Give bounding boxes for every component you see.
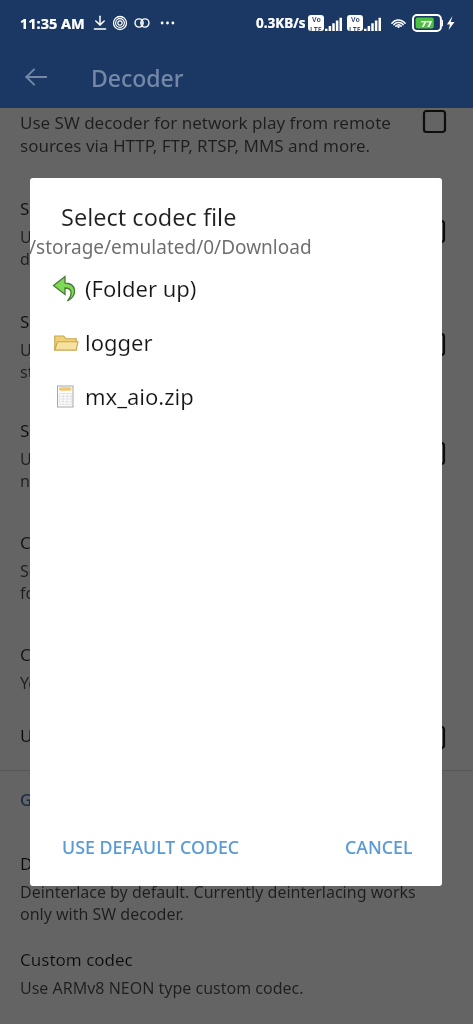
- staticText: Custom codec: [20, 948, 133, 971]
- staticText: LTE: [310, 25, 322, 31]
- staticText: Skip loop filter: [20, 197, 135, 220]
- staticText: 77: [421, 17, 432, 30]
- button[interactable]: Toggle: [423, 334, 444, 355]
- button[interactable]: USE DEFAULT CODEC: [48, 823, 254, 871]
- staticText: Vo: [312, 15, 321, 25]
- staticText: Skip B frames: [20, 419, 129, 442]
- button[interactable]: Custom codec: [0, 948, 473, 1024]
- staticText: Custom codec info: [20, 643, 169, 666]
- button[interactable]: Custom codec info: [0, 643, 473, 738]
- staticText: Use to speed up playback by skipping ste…: [20, 339, 302, 383]
- staticText: Use custom codec: [20, 724, 165, 747]
- staticText: CANCEL: [345, 835, 413, 859]
- staticText: mx_aio.zip: [85, 381, 194, 411]
- button[interactable]: logger: [30, 315, 442, 369]
- staticText: General: [20, 788, 82, 810]
- staticText: Use ARMv8 NEON type custom codec.: [20, 977, 304, 999]
- staticText: Select custom codec file by choosing zip…: [20, 560, 320, 604]
- staticText: LTE: [349, 25, 361, 31]
- button[interactable]: mx_aio.zip: [30, 369, 442, 423]
- staticText: (Folder up): [85, 273, 197, 303]
- button[interactable]: Toggle: [423, 443, 444, 464]
- staticText: 0.3KB/s: [256, 14, 306, 32]
- button[interactable]: Toggle: [424, 111, 445, 132]
- staticText: Decoder: [91, 62, 184, 93]
- staticText: USE DEFAULT CODEC: [62, 835, 240, 859]
- button[interactable]: Use custom codec: [0, 724, 473, 764]
- button[interactable]: Toggle: [423, 727, 444, 748]
- staticText: Vo: [351, 15, 360, 25]
- button[interactable]: Deinterlace: [0, 852, 473, 947]
- button[interactable]: Custom codec: [0, 531, 473, 626]
- staticText: Deinterlace by default. Currently deinte…: [20, 881, 416, 925]
- staticText: Your device currently uses ARMv8 codec.: [20, 672, 325, 694]
- button[interactable]: (Folder up): [30, 261, 442, 315]
- staticText: logger: [85, 327, 153, 357]
- staticText: Custom codec: [20, 531, 133, 554]
- button[interactable]: Skip frames: [0, 310, 473, 405]
- staticText: /storage/emulated/0/Download: [30, 234, 312, 260]
- staticText: Use SW decoder for network play from rem…: [20, 111, 391, 157]
- staticText: Use to speed up playback by skipping dec…: [20, 226, 302, 270]
- button[interactable]: CANCEL: [331, 823, 427, 871]
- button[interactable]: Skip B frames: [0, 419, 473, 514]
- staticText: Skip frames: [20, 310, 114, 333]
- staticText: Select codec file: [61, 201, 237, 233]
- button[interactable]: Back: [6, 46, 66, 108]
- staticText: Deinterlace: [20, 852, 112, 875]
- button[interactable]: Toggle: [423, 221, 444, 242]
- button[interactable]: Skip loop filter: [0, 197, 473, 292]
- staticText: 11:35 AM: [20, 13, 85, 33]
- staticText: Use to speed up playback by skipping non…: [20, 448, 302, 492]
